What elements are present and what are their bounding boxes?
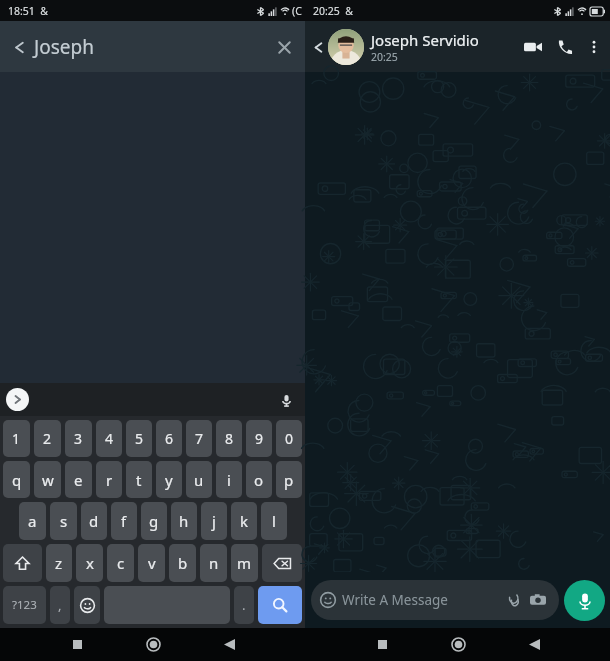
- button[interactable]: o: [246, 461, 272, 498]
- button[interactable]: Back: [513, 628, 555, 661]
- staticText: ,: [58, 596, 62, 614]
- staticText: Write A Message: [342, 591, 502, 609]
- button[interactable]: u: [186, 461, 212, 498]
- staticText: 20:25: [371, 50, 398, 64]
- button[interactable]: p: [276, 461, 302, 498]
- button[interactable]: Expand suggestions: [6, 388, 29, 411]
- button[interactable]: Home: [132, 628, 174, 661]
- button[interactable]: x: [76, 544, 103, 582]
- staticText: 0: [285, 429, 294, 448]
- staticText: h: [179, 511, 189, 531]
- staticText: y: [165, 470, 173, 490]
- button[interactable]: d: [81, 502, 107, 540]
- button[interactable]: 5: [126, 420, 152, 457]
- button[interactable]: 2: [34, 420, 61, 457]
- staticText: f: [121, 511, 127, 531]
- staticText: .: [242, 596, 246, 614]
- button[interactable]: Back: [208, 628, 250, 661]
- button[interactable]: l: [261, 502, 287, 540]
- staticText: m: [237, 553, 252, 573]
- staticText: g: [149, 511, 159, 531]
- button[interactable]: 9: [246, 420, 272, 457]
- staticText: z: [55, 553, 63, 573]
- button[interactable]: 7: [186, 420, 212, 457]
- staticText: 8: [225, 429, 234, 448]
- staticText: 5: [135, 429, 144, 448]
- button[interactable]: v: [138, 544, 165, 582]
- staticText: 4: [105, 429, 114, 448]
- button[interactable]: ,: [50, 586, 70, 624]
- button[interactable]: Search: [258, 586, 302, 624]
- button[interactable]: Backspace: [262, 544, 302, 582]
- button[interactable]: Attach: [502, 588, 526, 612]
- staticText: 2: [43, 429, 52, 448]
- button[interactable]: h: [171, 502, 197, 540]
- staticText: d: [89, 511, 99, 531]
- button[interactable]: Shift: [3, 544, 42, 582]
- button[interactable]: 8: [216, 420, 242, 457]
- button[interactable]: c: [107, 544, 134, 582]
- button[interactable]: Home: [437, 628, 479, 661]
- staticText: r: [106, 470, 113, 490]
- button[interactable]: w: [34, 461, 61, 498]
- button[interactable]: Camera: [526, 588, 550, 612]
- button[interactable]: b: [169, 544, 196, 582]
- staticText: e: [74, 470, 83, 490]
- button[interactable]: 0: [276, 420, 302, 457]
- staticText: x: [86, 553, 94, 573]
- staticText: w: [42, 470, 54, 490]
- staticText: ?123: [12, 597, 37, 613]
- button[interactable]: y: [156, 461, 182, 498]
- staticText: v: [148, 553, 156, 573]
- button[interactable]: e: [65, 461, 92, 498]
- button[interactable]: Voice input: [275, 389, 297, 411]
- staticText: l: [272, 511, 276, 531]
- button[interactable]: 1: [3, 420, 30, 457]
- staticText: n: [209, 553, 219, 573]
- button[interactable]: Clear search: [269, 32, 299, 62]
- button[interactable]: Video call: [517, 31, 549, 63]
- button[interactable]: f: [111, 502, 137, 540]
- button[interactable]: .: [234, 586, 254, 624]
- button[interactable]: t: [126, 461, 152, 498]
- button[interactable]: g: [141, 502, 167, 540]
- button[interactable]: i: [216, 461, 242, 498]
- staticText: 9: [255, 429, 264, 448]
- button[interactable]: r: [96, 461, 122, 498]
- button[interactable]: n: [200, 544, 227, 582]
- staticText: p: [284, 470, 294, 490]
- staticText: 20:25 &: [313, 4, 353, 18]
- button[interactable]: Recents: [361, 628, 403, 661]
- button[interactable]: z: [46, 544, 72, 582]
- staticText: q: [12, 470, 22, 490]
- button[interactable]: Voice call: [549, 31, 581, 63]
- staticText: j: [212, 511, 216, 531]
- button[interactable]: Record voice message: [564, 580, 605, 621]
- button[interactable]: Recents: [56, 628, 98, 661]
- staticText: i: [227, 470, 231, 490]
- button[interactable]: 3: [65, 420, 92, 457]
- button[interactable]: Back: [6, 34, 32, 60]
- button[interactable]: j: [201, 502, 227, 540]
- staticText: a: [28, 511, 37, 531]
- staticText: Joseph Servidio: [371, 30, 479, 50]
- staticText: 18:51 &: [8, 4, 48, 18]
- staticText: 7: [195, 429, 204, 448]
- button[interactable]: ?123: [3, 586, 46, 624]
- button[interactable]: Write A Message: [311, 580, 559, 620]
- button[interactable]: q: [3, 461, 30, 498]
- staticText: s: [60, 511, 68, 531]
- staticText: 1: [12, 429, 21, 448]
- button[interactable]: m: [231, 544, 258, 582]
- button[interactable]: a: [19, 502, 46, 540]
- button[interactable]: More options: [581, 34, 607, 60]
- button[interactable]: Emoji: [74, 586, 100, 624]
- button[interactable]: 4: [96, 420, 122, 457]
- staticText: u: [194, 470, 204, 490]
- button[interactable]: 6: [156, 420, 182, 457]
- button[interactable]: Back: [308, 37, 328, 57]
- button[interactable]: s: [50, 502, 77, 540]
- staticText: (C: [292, 4, 302, 18]
- button[interactable]: k: [231, 502, 257, 540]
